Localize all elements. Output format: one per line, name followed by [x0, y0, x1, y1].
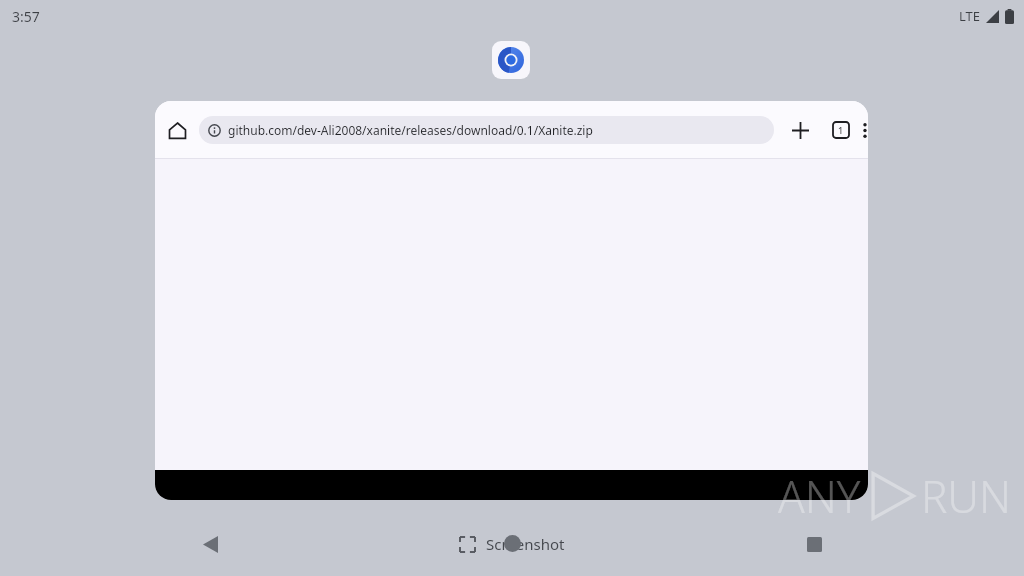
staticText: ANY	[778, 466, 861, 526]
button[interactable]: Home	[490, 521, 534, 565]
button[interactable]: Back	[188, 522, 232, 566]
button[interactable]: Recent apps	[792, 522, 836, 566]
button[interactable]: Chromium	[492, 41, 530, 79]
button[interactable]: Screenshot	[460, 534, 565, 554]
staticText: RUN	[921, 466, 1012, 526]
button[interactable]: New tab	[782, 112, 818, 148]
button[interactable]: More options	[862, 112, 868, 148]
staticText: 3:57	[12, 7, 40, 26]
staticText: Screenshot	[486, 534, 565, 554]
button[interactable]: github.com/dev-Ali2008/xanite/releases/d…	[199, 116, 774, 144]
staticText: 1	[838, 124, 844, 136]
button[interactable]: Tabs, 1 open	[823, 112, 859, 148]
staticText: github.com/dev-Ali2008/xanite/releases/d…	[228, 122, 593, 138]
staticText: LTE	[959, 7, 981, 25]
button[interactable]: Home	[159, 112, 195, 148]
